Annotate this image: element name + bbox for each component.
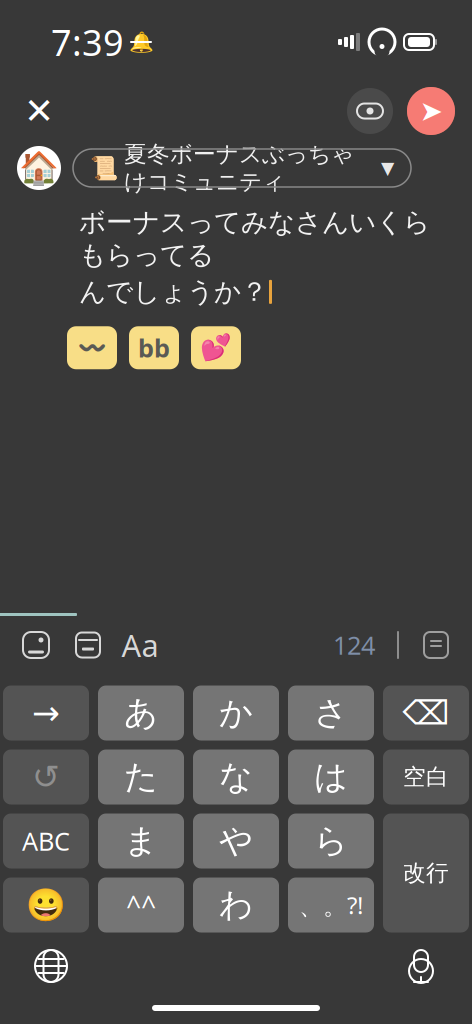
staticText: ↺ [32, 758, 60, 796]
staticText: 、。?! [299, 889, 363, 921]
staticText: 💕 [200, 333, 232, 362]
button[interactable]: bb [129, 326, 179, 369]
button[interactable]: 改行 [383, 813, 469, 932]
staticText: 空白 [403, 763, 449, 791]
button[interactable]: Drafts [413, 622, 459, 668]
staticText: さ [314, 692, 348, 733]
staticText: ABC [22, 824, 70, 858]
staticText: や [219, 820, 253, 861]
staticText: わ [219, 884, 253, 925]
staticText: な [219, 756, 253, 797]
staticText: た [124, 756, 158, 797]
staticText: 😀 [26, 887, 66, 923]
staticText: か [219, 692, 253, 733]
button[interactable]: わ [193, 877, 279, 932]
staticText: んでしょうか？ [79, 275, 268, 308]
button[interactable]: は [288, 749, 374, 804]
staticText: 7:39 [51, 18, 124, 66]
staticText: 〰 [76, 333, 108, 362]
button[interactable]: → [3, 685, 89, 740]
staticText: 🔔 [128, 31, 153, 53]
button[interactable]: ら [288, 813, 374, 868]
button[interactable]: Close [15, 87, 63, 135]
button[interactable]: 〰 [67, 326, 117, 369]
button[interactable]: ^^ [98, 877, 184, 932]
staticText: 🏠 [19, 150, 59, 186]
button[interactable]: ↺ [3, 749, 89, 804]
button[interactable]: Add photo [13, 622, 59, 668]
button[interactable]: 空白 [383, 749, 469, 804]
button[interactable]: Text format [117, 622, 163, 668]
button[interactable]: さ [288, 685, 374, 740]
button[interactable]: 📜 [73, 149, 411, 187]
button[interactable]: あ [98, 685, 184, 740]
button[interactable]: Switch keyboard [25, 940, 77, 992]
button[interactable]: た [98, 749, 184, 804]
button[interactable]: ま [98, 813, 184, 868]
staticText: あ [124, 692, 158, 733]
button[interactable]: 💕 [191, 326, 241, 369]
staticText: ら [314, 820, 348, 861]
button[interactable]: 😀 [3, 877, 89, 932]
staticText: ✕ [24, 91, 54, 131]
button[interactable]: な [193, 749, 279, 804]
staticText: ま [124, 820, 158, 861]
button[interactable]: か [193, 685, 279, 740]
staticText: Aa [121, 625, 158, 665]
button[interactable]: や [193, 813, 279, 868]
staticText: ボーナスってみなさんいくらもらってる [79, 206, 430, 271]
staticText: → [32, 694, 60, 732]
button[interactable]: ⌫ [383, 685, 469, 740]
staticText: ➤ [419, 95, 442, 127]
button[interactable]: Preview [347, 88, 393, 134]
button[interactable]: 、。?! [288, 877, 374, 932]
staticText: ▼ [381, 158, 394, 178]
staticText: 124 [333, 628, 375, 662]
button[interactable]: ABC [3, 813, 89, 868]
button[interactable]: Add poll [65, 622, 111, 668]
staticText: ^^ [126, 887, 156, 923]
staticText: 夏冬ボーナスぶっちゃけコミュニティ [124, 140, 354, 196]
staticText: ⌫ [402, 694, 449, 732]
staticText: 📜 [90, 155, 118, 181]
staticText: は [314, 756, 348, 797]
button[interactable]: Dictation [395, 940, 447, 992]
staticText: bb [138, 331, 170, 364]
button[interactable]: Send [407, 87, 455, 135]
staticText: 改行 [403, 859, 449, 887]
